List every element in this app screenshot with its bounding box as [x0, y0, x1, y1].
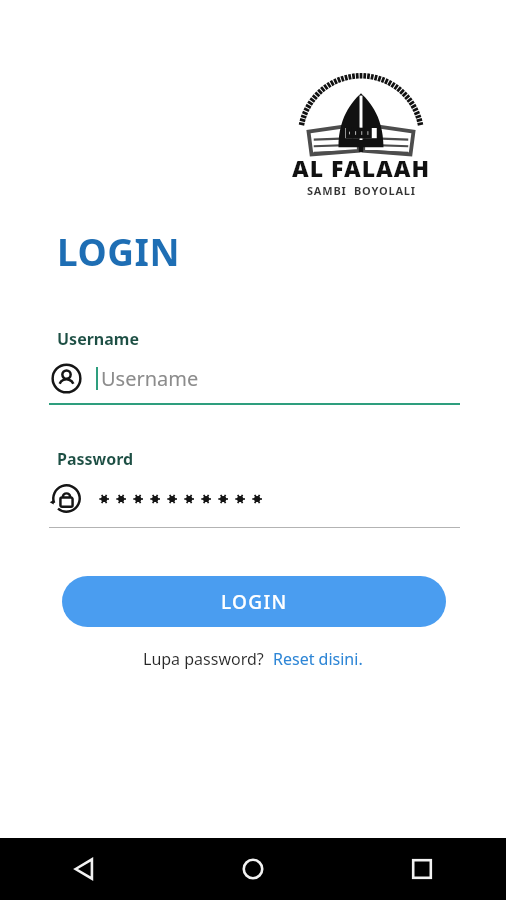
button[interactable]: LOGIN	[62, 576, 446, 627]
staticText: LOGIN	[57, 226, 180, 276]
staticText: SAMBI BOYOLALI	[307, 183, 416, 198]
button[interactable]: Reset disini.	[273, 648, 363, 670]
staticText: Username	[101, 365, 199, 392]
other: Username field	[50, 362, 83, 395]
other: Password field	[50, 482, 83, 515]
button[interactable]: Recent apps	[337, 838, 506, 900]
button[interactable]: Username field	[50, 362, 460, 395]
staticText: Username	[57, 328, 139, 350]
button[interactable]: Password field	[50, 482, 460, 515]
button[interactable]: Back	[0, 838, 168, 900]
staticText: Reset disini.	[273, 648, 363, 670]
staticText: AL FALAAH	[292, 152, 431, 183]
staticText: Password	[57, 448, 134, 470]
button[interactable]: Home	[168, 838, 337, 900]
staticText: Lupa password?	[143, 648, 264, 670]
staticText: LOGIN	[221, 589, 288, 615]
